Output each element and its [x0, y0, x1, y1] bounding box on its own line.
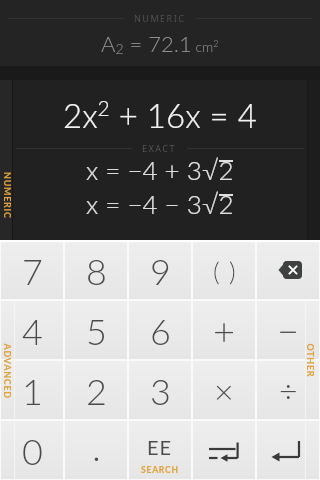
button[interactable]: 4 — [1, 301, 63, 359]
button[interactable]: 1 — [1, 361, 63, 419]
staticText: x = −4 − 3 — [86, 188, 202, 216]
button[interactable]: 8 — [65, 241, 127, 299]
button[interactable]: EE — [129, 421, 191, 479]
staticText: ADVANCED — [1, 343, 12, 399]
staticText: 3 — [150, 369, 171, 412]
staticText: 2 — [86, 369, 107, 412]
button[interactable] — [257, 421, 319, 479]
staticText: ( — [213, 255, 220, 286]
button[interactable]: 6 — [129, 301, 191, 359]
button[interactable]: ( — [193, 241, 255, 299]
staticText: 9 — [150, 249, 171, 292]
button[interactable]: + — [193, 301, 255, 359]
button[interactable]: . — [65, 421, 127, 479]
staticText: ÷ — [279, 371, 298, 409]
staticText: − — [277, 307, 300, 353]
staticText: EXACT — [142, 142, 177, 154]
staticText: 6 — [150, 309, 171, 352]
staticText: OTHER — [304, 343, 315, 377]
staticText: 4 — [22, 309, 43, 352]
staticText: x = −4 + 3 — [86, 154, 202, 182]
staticText: . — [92, 423, 101, 469]
staticText: NUMERIC — [134, 12, 186, 24]
button[interactable]: 5 — [65, 301, 127, 359]
staticText: 5 — [86, 309, 107, 352]
button[interactable]: × — [193, 361, 255, 419]
staticText: SEARCH — [141, 465, 179, 475]
staticText: EE — [147, 435, 173, 459]
button[interactable]: 0 — [1, 421, 63, 479]
staticText: √2 — [202, 188, 234, 216]
staticText: NUMERIC — [2, 172, 13, 219]
staticText: 7 — [22, 249, 43, 292]
staticText: √2 — [202, 154, 234, 182]
staticText: A2 = 72.1 cm2 — [101, 30, 219, 57]
staticText: ) — [229, 255, 236, 286]
button[interactable] — [257, 241, 319, 299]
button[interactable] — [193, 421, 255, 479]
button[interactable]: ÷ — [257, 361, 319, 419]
staticText: + — [213, 307, 236, 353]
staticText: 8 — [86, 249, 107, 292]
staticText: 1 — [22, 369, 43, 412]
staticText: 0 — [22, 429, 43, 472]
button[interactable]: 7 — [1, 241, 63, 299]
button[interactable]: 2 — [65, 361, 127, 419]
staticText: 2x2 + 16x = 4 — [63, 95, 257, 135]
button[interactable]: − — [257, 301, 319, 359]
staticText: × — [214, 370, 234, 411]
button[interactable]: 9 — [129, 241, 191, 299]
button[interactable]: 3 — [129, 361, 191, 419]
